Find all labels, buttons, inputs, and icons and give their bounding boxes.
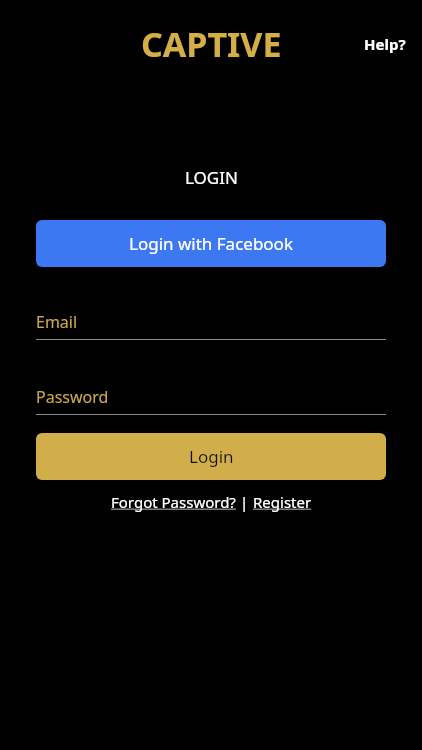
staticText: Password: [36, 386, 109, 408]
button[interactable]: Login with Facebook: [36, 220, 386, 267]
staticText: LOGIN: [185, 166, 238, 189]
button[interactable]: Register: [253, 492, 312, 512]
button[interactable]: Password: [36, 386, 386, 415]
staticText: Forgot Password?: [111, 492, 236, 512]
staticText: Help?: [364, 34, 406, 54]
staticText: Email: [36, 311, 78, 333]
staticText: CAPTIVE: [141, 21, 282, 67]
staticText: Register: [253, 492, 312, 512]
staticText: Login: [189, 445, 234, 468]
staticText: |: [236, 492, 253, 512]
button[interactable]: Login: [36, 433, 386, 480]
button[interactable]: Help?: [360, 28, 410, 60]
staticText: Login with Facebook: [129, 232, 293, 255]
button[interactable]: Email: [36, 311, 386, 340]
button[interactable]: Forgot Password?: [111, 492, 236, 512]
